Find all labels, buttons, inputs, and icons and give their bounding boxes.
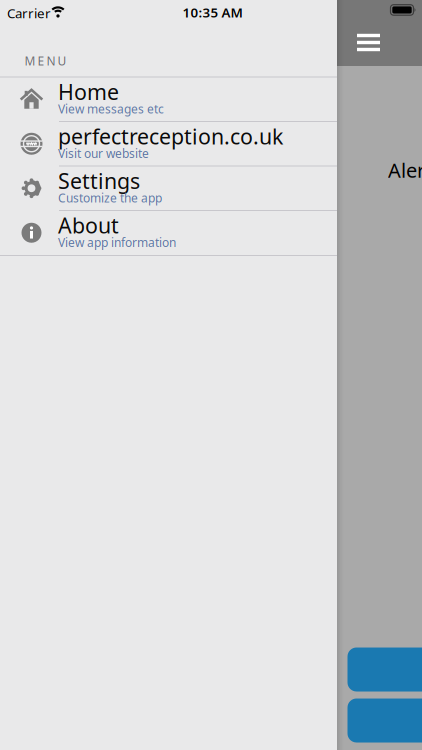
button[interactable]: Menu (348, 25, 388, 59)
staticText: Home (58, 78, 119, 106)
button[interactable]: Action 1 (347, 647, 422, 691)
staticText: About (58, 211, 119, 239)
staticText: Settings (58, 167, 140, 195)
staticText: Customize the app (58, 190, 162, 206)
staticText: Alerts (388, 157, 422, 183)
button[interactable]: perfectreception.co.uk (0, 121, 337, 166)
staticText: Carrier (7, 4, 51, 22)
staticText: Visit our website (58, 145, 149, 161)
button[interactable]: Home (0, 77, 337, 121)
button[interactable]: Action 2 (347, 698, 422, 742)
staticText: View app information (58, 234, 176, 250)
staticText: View messages etc (58, 101, 164, 117)
staticText: 10:35 AM (182, 3, 242, 21)
staticText: perfectreception.co.uk (58, 122, 283, 150)
button[interactable]: Settings (0, 166, 337, 210)
staticText: MENU (24, 53, 66, 69)
button[interactable]: About (0, 210, 337, 255)
